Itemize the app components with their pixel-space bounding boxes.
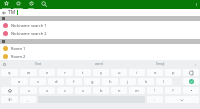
staticText: Text (35, 62, 42, 66)
button[interactable]: ? (165, 87, 181, 94)
staticText: . (154, 97, 156, 102)
button[interactable]: y (93, 69, 109, 76)
staticText: Friends (2, 6, 11, 9)
staticText: Nickname search 1 (11, 23, 47, 28)
button[interactable]: m (129, 87, 145, 94)
button[interactable]: g (84, 78, 100, 85)
staticText: u (118, 70, 121, 75)
staticText: , (27, 97, 29, 102)
staticText: Find Content (24, 6, 38, 9)
button[interactable]: n (111, 87, 127, 94)
staticText: m (135, 88, 139, 93)
staticText: d (55, 79, 58, 84)
button[interactable]: j (120, 78, 136, 85)
button[interactable]: f (66, 78, 82, 85)
staticText: l (163, 79, 165, 84)
button[interactable]: , (20, 96, 36, 103)
staticText: ? (172, 88, 174, 93)
button[interactable]: l (156, 78, 172, 85)
button[interactable]: ! (147, 87, 163, 94)
button[interactable]: b (93, 87, 109, 94)
staticText: z (28, 88, 30, 93)
button[interactable]: Keyboard settings (0, 60, 8, 68)
staticText: Room 2 (11, 54, 26, 59)
staticText: v (82, 88, 85, 93)
staticText: o (154, 70, 157, 75)
button[interactable]: q (1, 69, 18, 76)
button[interactable]: w (20, 69, 37, 76)
button[interactable]: h (102, 78, 118, 85)
button[interactable]: t (75, 69, 91, 76)
button[interactable]: Find Content (24, 0, 38, 9)
staticText: Nickname search 2 (11, 31, 47, 36)
button[interactable]: d (48, 78, 64, 85)
staticText: k (145, 79, 148, 84)
staticText: !#1 (8, 98, 12, 102)
staticText: Emoji (156, 62, 165, 66)
button[interactable]: More (192, 0, 200, 9)
staticText: e (46, 70, 49, 75)
button[interactable]: i (129, 69, 145, 76)
staticText: TM (8, 9, 16, 16)
staticText: s (37, 79, 39, 84)
staticText: j (127, 79, 129, 84)
button[interactable]: a (11, 78, 28, 85)
button[interactable]: Friends (0, 0, 12, 9)
button[interactable]: Symbols (1, 96, 18, 103)
button[interactable]: word (95, 62, 103, 66)
staticText: Services (13, 6, 23, 9)
button[interactable]: Nickname search 2 (0, 29, 200, 37)
button[interactable]: u (111, 69, 127, 76)
button[interactable]: e (39, 69, 55, 76)
button[interactable]: Room 1 (0, 44, 200, 52)
staticText: c (64, 88, 66, 93)
button[interactable]: Period (183, 87, 199, 94)
button[interactable]: Emoji (156, 62, 165, 66)
staticText: p (172, 70, 175, 75)
staticText: b (100, 88, 103, 93)
staticText: ! (154, 88, 156, 93)
button[interactable]: Shift (1, 87, 18, 94)
button[interactable]: Room 2 (0, 52, 200, 60)
staticText: r (64, 70, 66, 75)
staticText: a (18, 79, 21, 84)
staticText: f (73, 79, 75, 84)
button[interactable]: x (39, 87, 55, 94)
staticText: i (136, 70, 138, 75)
button[interactable]: Nickname search 1 (0, 21, 200, 29)
staticText: word (95, 62, 103, 66)
staticText: › (195, 62, 197, 67)
staticText: t (82, 70, 84, 75)
staticText: q (8, 70, 11, 75)
button[interactable]: z (20, 87, 37, 94)
staticText: Room 1 (11, 46, 26, 51)
button[interactable]: v (75, 87, 91, 94)
button[interactable]: More suggestions (192, 60, 200, 68)
button[interactable]: Backspace (183, 69, 199, 76)
button[interactable]: s (30, 78, 46, 85)
button[interactable]: Search (38, 0, 50, 9)
button[interactable]: Hide keyboard (165, 96, 199, 103)
button[interactable]: k (138, 78, 154, 85)
staticText: n (118, 88, 121, 93)
button[interactable]: Services (12, 0, 24, 9)
button[interactable]: p (165, 69, 181, 76)
button[interactable]: o (147, 69, 163, 76)
button[interactable]: r (57, 69, 73, 76)
staticText: y (100, 70, 103, 75)
staticText: w (27, 70, 31, 75)
button[interactable]: Back (1, 10, 7, 16)
staticText: x (46, 88, 49, 93)
staticText: h (109, 79, 112, 84)
button[interactable]: c (57, 87, 73, 94)
staticText: g (91, 79, 94, 84)
button[interactable]: Text (35, 62, 42, 66)
button[interactable]: Enter (183, 78, 199, 85)
